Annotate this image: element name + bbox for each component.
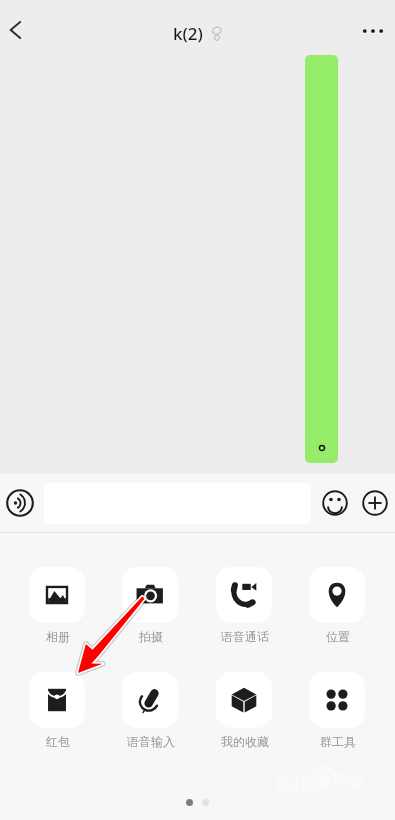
- button[interactable]: Sent message: [305, 55, 338, 463]
- button[interactable]: 红包: [21, 672, 95, 752]
- button[interactable]: 位置: [301, 567, 375, 647]
- button[interactable]: 我的收藏: [208, 672, 282, 752]
- button[interactable]: Voice message: [6, 489, 34, 517]
- staticText: 拍摄: [114, 629, 188, 644]
- button[interactable]: Back: [0, 15, 30, 45]
- button[interactable]: 语音通话: [208, 567, 282, 647]
- button[interactable]: 群工具: [301, 672, 375, 752]
- staticText: 位置: [301, 629, 375, 644]
- staticText: k(2): [173, 22, 203, 45]
- button[interactable]: Emoji: [322, 490, 348, 516]
- staticText: 语音输入: [114, 734, 188, 749]
- staticText: 红包: [21, 734, 95, 749]
- button[interactable]: 相册: [21, 567, 95, 647]
- button[interactable]: 语音输入: [114, 672, 188, 752]
- staticText: 群工具: [301, 734, 375, 749]
- staticText: 我的收藏: [208, 734, 282, 749]
- staticText: 语音通话: [208, 629, 282, 644]
- button[interactable]: 拍摄: [114, 567, 188, 647]
- staticText: 相册: [21, 629, 95, 644]
- button[interactable]: More: [362, 490, 388, 516]
- button[interactable]: More options: [351, 9, 395, 53]
